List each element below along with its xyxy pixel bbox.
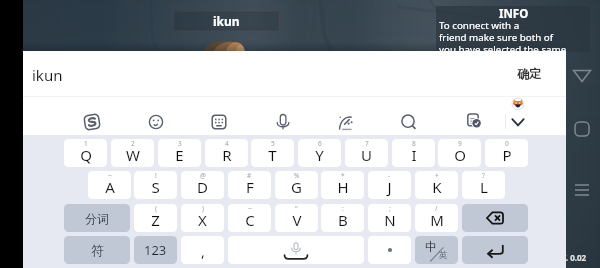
button[interactable]: C xyxy=(228,204,271,232)
button[interactable]: 中 xyxy=(415,236,458,264)
button[interactable]: T xyxy=(251,139,294,167)
staticText: ! xyxy=(155,171,157,180)
button[interactable]: F xyxy=(228,171,271,199)
staticText: 0 xyxy=(505,139,509,148)
staticText: O xyxy=(454,145,466,165)
staticText: W xyxy=(126,145,140,165)
staticText: R xyxy=(222,145,232,165)
button[interactable]: M xyxy=(415,204,458,232)
button[interactable]: A xyxy=(88,171,131,199)
staticText: X xyxy=(198,210,207,230)
button[interactable]: R xyxy=(205,139,248,167)
button[interactable]: Clipboard xyxy=(459,108,487,136)
staticText: P xyxy=(502,145,512,165)
staticText: 123 xyxy=(144,241,167,259)
staticText: A xyxy=(105,177,115,197)
staticText: Y xyxy=(315,145,324,165)
button[interactable]: L xyxy=(462,171,505,199)
button[interactable]: E xyxy=(158,139,201,167)
staticText: V xyxy=(292,210,302,230)
staticText: - xyxy=(388,171,391,180)
button[interactable]: K xyxy=(415,171,458,199)
button[interactable]: Z xyxy=(134,204,177,232)
button[interactable]: H xyxy=(321,171,364,199)
button[interactable]: J xyxy=(368,171,411,199)
button[interactable]: B xyxy=(321,204,364,232)
staticText: @ xyxy=(200,171,206,180)
button[interactable]: Y xyxy=(298,139,341,167)
staticText: 英 xyxy=(439,250,448,261)
button[interactable]: P xyxy=(485,139,528,167)
staticText: 符 xyxy=(91,242,104,258)
button[interactable]: Enter xyxy=(462,236,528,264)
button[interactable]: W xyxy=(111,139,154,167)
staticText: 中 xyxy=(425,239,437,254)
button[interactable]: Voice input xyxy=(269,108,297,136)
staticText: N xyxy=(384,210,396,230)
button[interactable]: D xyxy=(181,171,224,199)
button[interactable]: O xyxy=(438,139,481,167)
button[interactable]: Handwriting xyxy=(332,108,360,136)
button[interactable]: Q xyxy=(64,139,107,167)
staticText: U xyxy=(361,145,372,165)
button[interactable]: Emoji xyxy=(142,108,170,136)
staticText: : xyxy=(342,204,344,213)
staticText: Z xyxy=(151,210,160,230)
staticText: 1 xyxy=(84,139,88,148)
button[interactable]: Back xyxy=(570,62,594,86)
staticText: INFO xyxy=(499,6,529,22)
staticText: F xyxy=(246,177,254,197)
button[interactable]: Space xyxy=(228,236,364,264)
button[interactable]: ikun xyxy=(23,51,566,96)
staticText: 分词 xyxy=(85,211,109,226)
staticText: Q xyxy=(80,145,92,165)
staticText: , xyxy=(201,242,205,261)
staticText: % xyxy=(294,171,300,180)
staticText: B xyxy=(338,210,348,230)
staticText: E xyxy=(175,145,184,165)
staticText: ~ xyxy=(108,171,112,180)
button[interactable]: X xyxy=(181,204,224,232)
button[interactable]: Sogou input xyxy=(78,108,106,136)
staticText: / xyxy=(435,204,438,213)
button[interactable]: 123 xyxy=(134,236,177,264)
button[interactable]: Backspace xyxy=(462,204,528,232)
staticText: K xyxy=(432,177,442,197)
staticText: S xyxy=(151,177,160,197)
button[interactable]: Hide keyboard xyxy=(504,108,532,136)
staticText: 3 xyxy=(178,139,182,148)
staticText: ; xyxy=(389,204,391,213)
staticText: 9 xyxy=(458,139,462,148)
button[interactable] xyxy=(368,236,411,264)
button[interactable]: Recent apps xyxy=(570,178,594,202)
staticText: ikun xyxy=(32,65,63,85)
button[interactable]: ikun xyxy=(175,12,278,30)
staticText: I xyxy=(411,145,417,165)
button[interactable]: I xyxy=(392,139,435,167)
staticText: G xyxy=(291,177,302,197)
staticText: " xyxy=(295,204,298,213)
staticText: L xyxy=(480,177,488,197)
staticText: D xyxy=(197,177,208,197)
staticText: T xyxy=(268,145,277,165)
button[interactable]: S xyxy=(134,171,177,199)
staticText: ~ xyxy=(248,204,252,213)
staticText: 8 xyxy=(412,139,416,148)
button[interactable]: G xyxy=(275,171,318,199)
staticText: C xyxy=(245,210,255,230)
staticText: ikun xyxy=(213,13,240,29)
button[interactable]: U xyxy=(345,139,388,167)
staticText: H xyxy=(337,177,349,197)
staticText: ) xyxy=(202,204,204,213)
button[interactable]: V xyxy=(275,204,318,232)
button[interactable]: N xyxy=(368,204,411,232)
staticText: 6 xyxy=(318,139,322,148)
button[interactable]: Keyboard layout xyxy=(205,108,233,136)
button[interactable]: , xyxy=(181,236,224,264)
staticText: * xyxy=(341,171,345,180)
button[interactable]: 符 xyxy=(64,236,130,264)
button[interactable]: Search xyxy=(395,108,423,136)
button[interactable]: 分词 xyxy=(64,204,130,232)
button[interactable]: Home xyxy=(570,117,594,141)
button[interactable]: 确定 xyxy=(508,58,550,88)
